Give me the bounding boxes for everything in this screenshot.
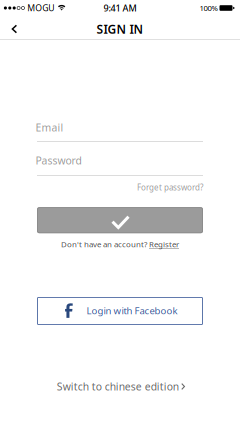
staticText: 9:41 AM — [103, 2, 136, 14]
button[interactable]: Login with Facebook — [37, 297, 203, 325]
button[interactable]: Back — [4, 18, 25, 40]
staticText: 100% — [199, 3, 217, 13]
button[interactable]: Register — [149, 239, 179, 250]
button[interactable]: Switch to chinese edition — [57, 379, 185, 394]
staticText: Login with Facebook — [86, 304, 177, 317]
staticText: Switch to chinese edition — [57, 379, 179, 394]
staticText: Email — [35, 120, 63, 135]
button[interactable]: Sign in — [37, 207, 203, 233]
staticText: Register — [149, 239, 179, 250]
staticText: MOGU — [27, 2, 54, 14]
staticText: SIGN IN — [96, 21, 143, 37]
staticText: Forget password? — [137, 182, 203, 193]
staticText: Don't have an account? — [61, 239, 149, 250]
staticText: Password — [35, 153, 81, 168]
button[interactable]: Forget password? — [137, 182, 203, 193]
